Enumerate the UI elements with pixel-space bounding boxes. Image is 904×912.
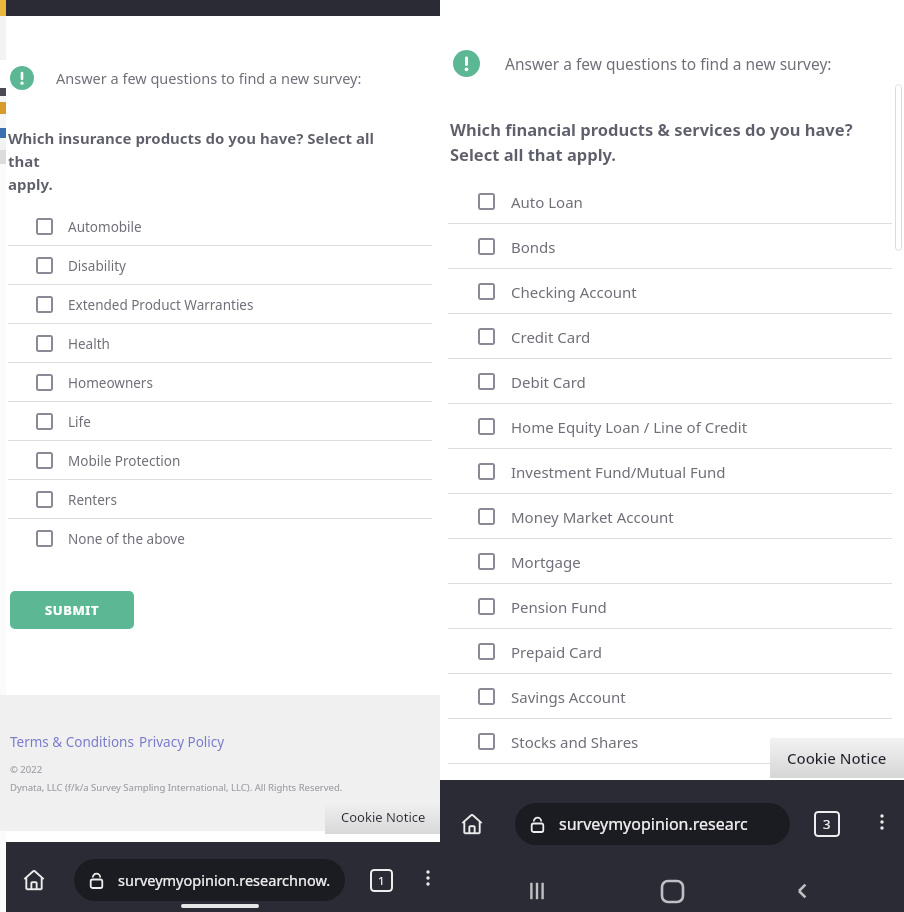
button[interactable]: Recents — [518, 872, 556, 910]
button[interactable]: Tabs — [367, 866, 395, 894]
button[interactable]: Money Market Account — [440, 494, 904, 539]
button[interactable]: Home Equity Loan / Line of Credit — [440, 404, 904, 449]
staticText: Which insurance products do you have? Se… — [8, 128, 400, 194]
staticText: SUBMIT — [45, 601, 100, 619]
button[interactable]: Health — [0, 324, 440, 363]
button[interactable]: Extended Product Warranties — [0, 285, 440, 324]
staticText: Answer a few questions to find a new sur… — [505, 53, 832, 74]
button[interactable]: Home — [456, 808, 488, 840]
button[interactable]: More options — [868, 808, 896, 836]
staticText: Debit Card — [511, 372, 586, 392]
staticText: Prepaid Card — [511, 642, 603, 662]
button[interactable]: Cookie Notice — [325, 800, 442, 834]
staticText: Cookie Notice — [341, 808, 426, 826]
staticText: Auto Loan — [511, 192, 583, 212]
button[interactable]: Renters — [0, 480, 440, 519]
staticText: Checking Account — [511, 282, 637, 302]
button[interactable]: Bonds — [440, 224, 904, 269]
button[interactable]: surveymyopinion.researchnow. — [74, 859, 345, 901]
button[interactable]: Cookie Notice — [770, 738, 904, 778]
button[interactable]: Auto Loan — [440, 179, 904, 224]
button[interactable]: Mobile Protection — [0, 441, 440, 480]
button[interactable]: Mortgage — [440, 539, 904, 584]
staticText: Savings Account — [511, 687, 626, 707]
staticText: Answer a few questions to find a new sur… — [56, 68, 362, 88]
button[interactable]: Home — [653, 872, 691, 910]
button[interactable]: Automobile — [0, 207, 440, 246]
staticText: Home Equity Loan / Line of Credit — [511, 417, 748, 437]
staticText: Mobile Protection — [68, 452, 181, 470]
button[interactable]: Investment Fund/Mutual Fund — [440, 449, 904, 494]
staticText: None of the above — [68, 530, 185, 548]
staticText: Pension Fund — [511, 597, 607, 617]
button[interactable]: Stocks and Shares — [440, 719, 904, 764]
button[interactable]: Terms & Conditions — [10, 733, 134, 751]
button[interactable]: Privacy Policy — [139, 733, 225, 751]
button[interactable]: Back — [784, 872, 822, 910]
button[interactable]: Prepaid Card — [440, 629, 904, 674]
button[interactable]: SUBMIT — [10, 591, 134, 629]
staticText: Credit Card — [511, 327, 591, 347]
button[interactable]: Home — [18, 864, 50, 896]
button[interactable]: More options — [414, 864, 442, 892]
staticText: Homeowners — [68, 374, 153, 392]
staticText: Disability — [68, 257, 126, 275]
staticText: Bonds — [511, 237, 556, 257]
button[interactable]: Pension Fund — [440, 584, 904, 629]
button[interactable]: Debit Card — [440, 359, 904, 404]
button[interactable]: Tabs — [813, 810, 841, 838]
button[interactable]: None of the above — [0, 519, 440, 558]
staticText: Automobile — [68, 218, 142, 236]
staticText: © 2022 — [10, 763, 43, 776]
staticText: 1 — [378, 873, 385, 889]
button[interactable]: Disability — [0, 246, 440, 285]
button[interactable]: Life — [0, 402, 440, 441]
staticText: 3 — [823, 815, 831, 833]
button[interactable]: Homeowners — [0, 363, 440, 402]
staticText: Extended Product Warranties — [68, 296, 254, 314]
button[interactable]: surveymyopinion.researc — [515, 803, 790, 845]
staticText: Renters — [68, 491, 117, 509]
staticText: Stocks and Shares — [511, 732, 639, 752]
staticText: surveymyopinion.researchnow. — [118, 870, 331, 890]
staticText: Dynata, LLC (f/k/a Survey Sampling Inter… — [10, 781, 343, 794]
staticText: Health — [68, 335, 110, 353]
staticText: Cookie Notice — [787, 748, 887, 768]
staticText: Which financial products & services do y… — [450, 118, 853, 165]
button[interactable]: Savings Account — [440, 674, 904, 719]
staticText: surveymyopinion.researc — [559, 813, 748, 835]
staticText: Life — [68, 413, 91, 431]
button[interactable]: Credit Card — [440, 314, 904, 359]
staticText: Investment Fund/Mutual Fund — [511, 462, 726, 482]
staticText: Money Market Account — [511, 507, 674, 527]
staticText: Mortgage — [511, 552, 581, 572]
button[interactable]: Checking Account — [440, 269, 904, 314]
